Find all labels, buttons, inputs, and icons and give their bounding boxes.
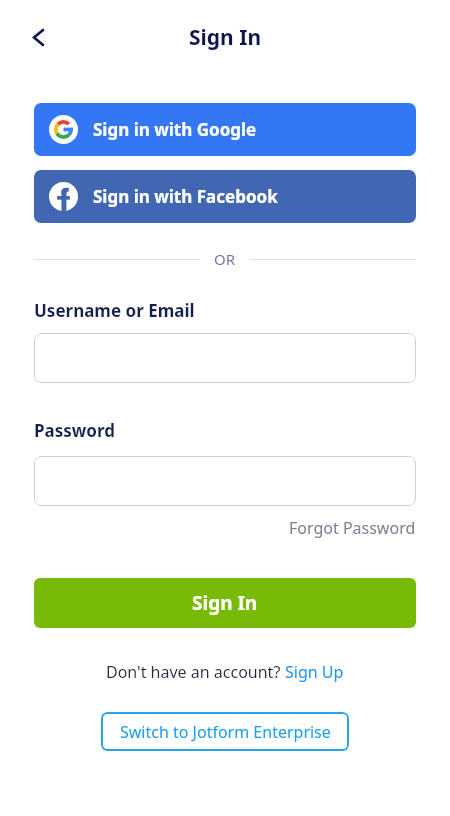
staticText: Username or Email: [34, 299, 195, 322]
staticText: OR: [214, 249, 236, 269]
button[interactable]: Switch to Jotform Enterprise: [101, 712, 349, 751]
staticText: Switch to Jotform Enterprise: [120, 721, 331, 743]
button[interactable]: Sign in with Facebook: [34, 170, 416, 223]
button[interactable]: Forgot Password: [289, 517, 416, 539]
staticText: Don't have an account?: [106, 661, 285, 683]
button[interactable]: Sign in with Google: [34, 103, 416, 156]
button[interactable]: Sign In: [34, 578, 416, 628]
staticText: Sign Up: [285, 661, 344, 683]
button[interactable]: Sign Up: [285, 661, 344, 683]
staticText: Sign In: [192, 590, 258, 616]
staticText: Forgot Password: [289, 517, 416, 539]
staticText: Sign In: [189, 23, 262, 52]
button[interactable]: [23, 22, 53, 52]
button[interactable]: [34, 333, 416, 383]
staticText: Sign in with Facebook: [93, 185, 278, 208]
staticText: Sign in with Google: [93, 118, 257, 141]
staticText: Password: [34, 419, 115, 442]
button[interactable]: [34, 456, 416, 506]
